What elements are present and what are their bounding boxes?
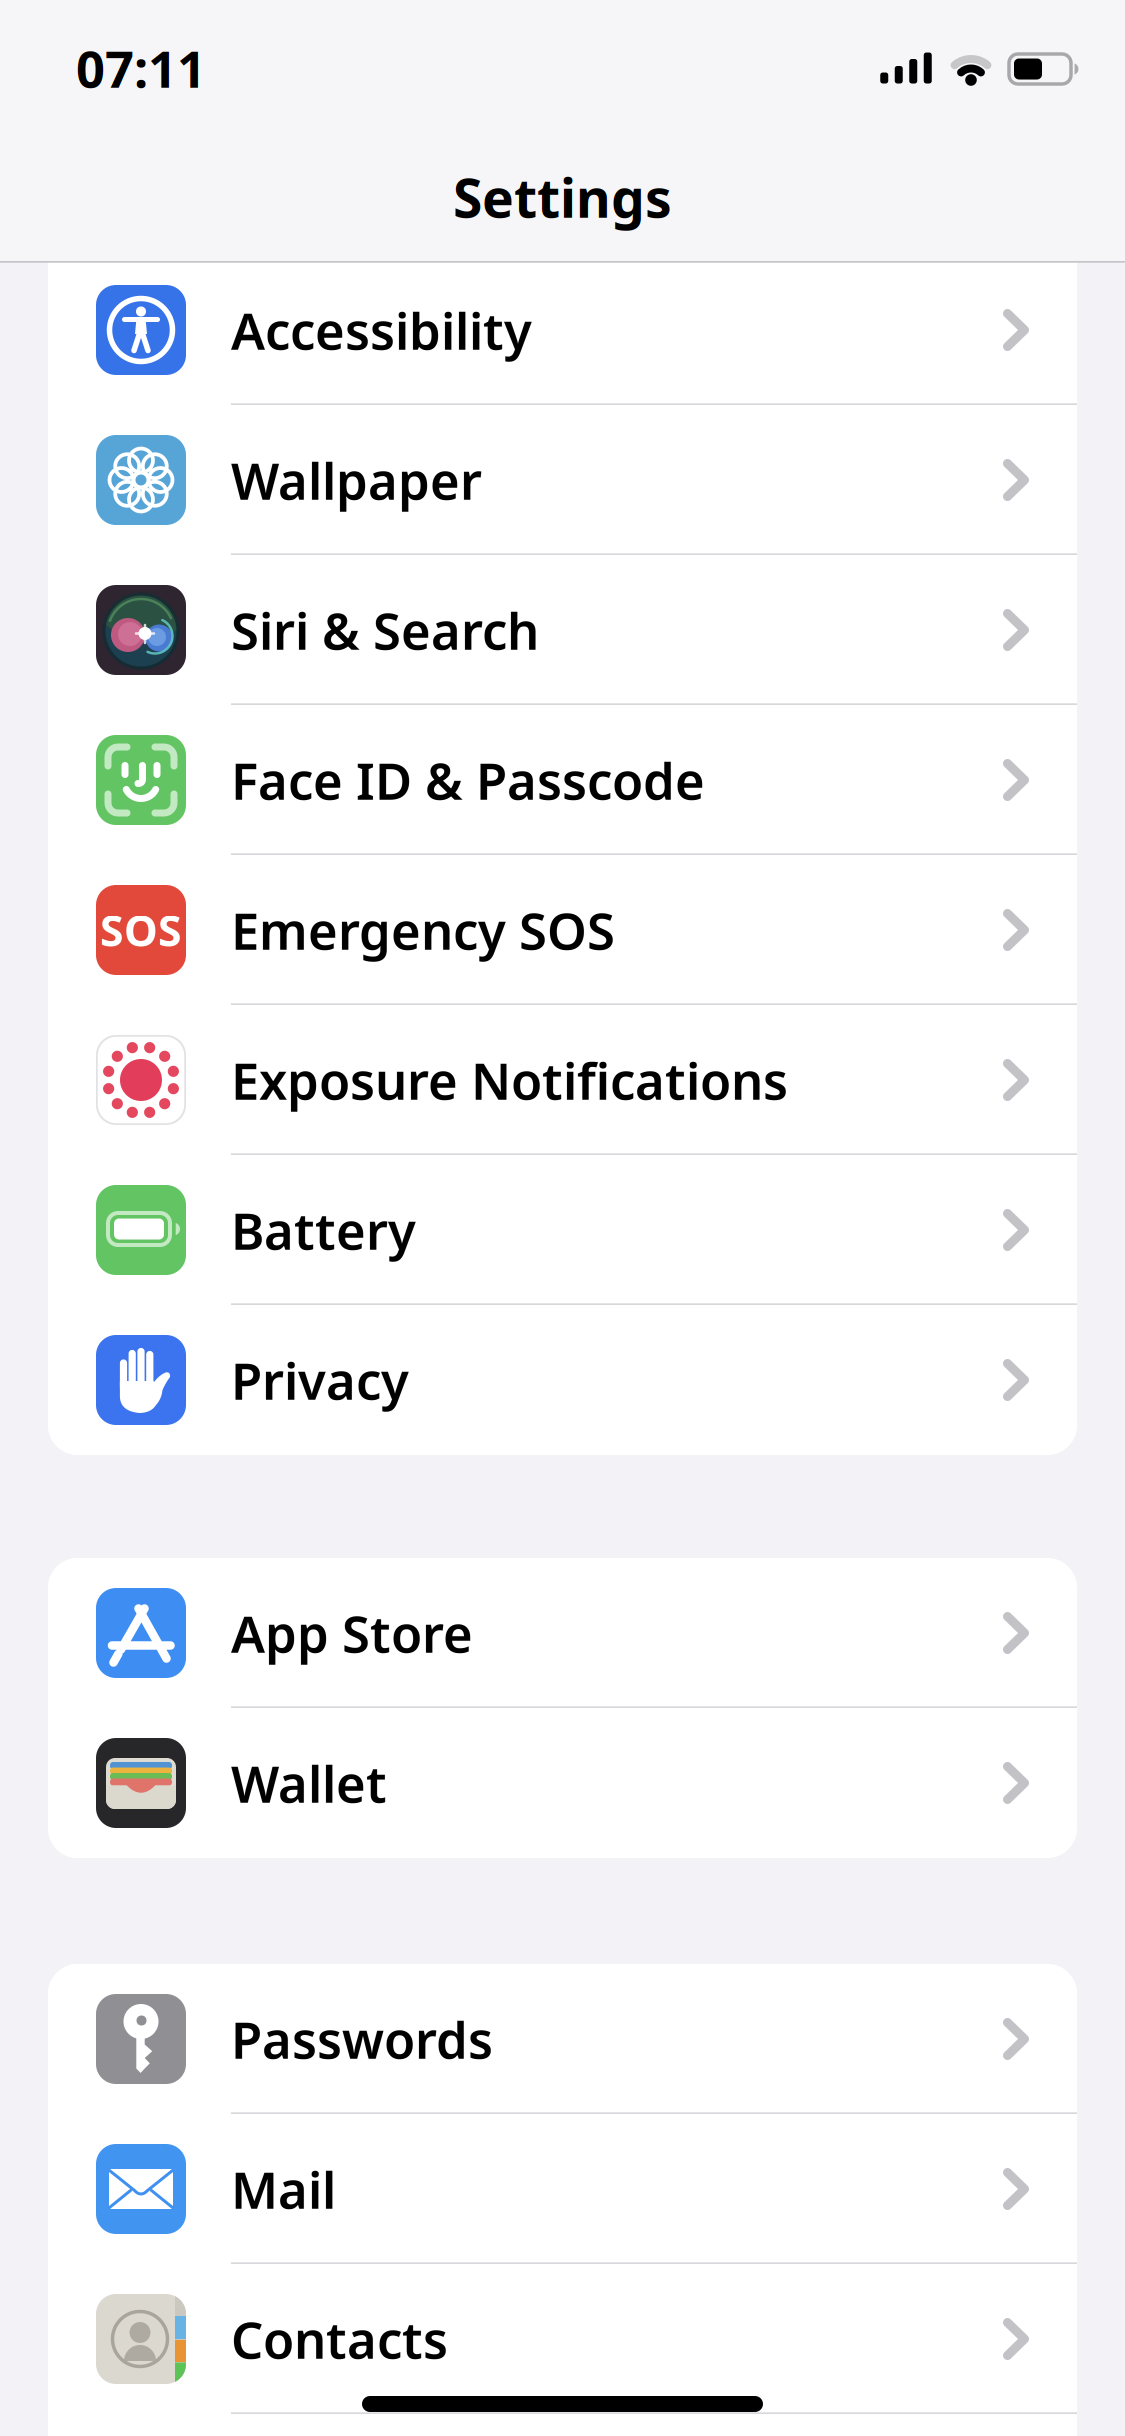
staticText: Wallpaper <box>231 446 482 514</box>
button[interactable]: Siri & Search <box>48 555 1077 705</box>
button[interactable]: Battery <box>48 1155 1077 1305</box>
staticText: Contacts <box>231 2305 448 2373</box>
staticText: Exposure Notifications <box>231 1046 788 1114</box>
button[interactable]: Wallet <box>48 1708 1077 1858</box>
button[interactable]: Exposure Notifications <box>48 1005 1077 1155</box>
button[interactable]: Contacts <box>48 2264 1077 2414</box>
staticText: Battery <box>231 1196 416 1264</box>
staticText: Wallet <box>231 1749 387 1817</box>
staticText: Emergency SOS <box>231 896 615 964</box>
staticText: Privacy <box>231 1346 409 1414</box>
staticText: 07:11 <box>76 34 206 102</box>
staticText: Mail <box>231 2155 336 2223</box>
button[interactable]: Privacy <box>48 1305 1077 1455</box>
button[interactable]: Accessibility <box>48 255 1077 405</box>
button[interactable]: SOS <box>48 855 1077 1005</box>
button[interactable]: Passwords <box>48 1964 1077 2114</box>
button[interactable]: Wallpaper <box>48 405 1077 555</box>
staticText: SOS <box>100 902 182 958</box>
button[interactable]: Face ID & Passcode <box>48 705 1077 855</box>
staticText: Settings <box>453 162 672 232</box>
staticText: Face ID & Passcode <box>231 746 705 814</box>
staticText: App Store <box>231 1599 473 1667</box>
staticText: Siri & Search <box>231 596 539 664</box>
button[interactable]: App Store <box>48 1558 1077 1708</box>
button[interactable]: Mail <box>48 2114 1077 2264</box>
staticText: Accessibility <box>231 296 532 364</box>
staticText: Passwords <box>231 2005 493 2073</box>
